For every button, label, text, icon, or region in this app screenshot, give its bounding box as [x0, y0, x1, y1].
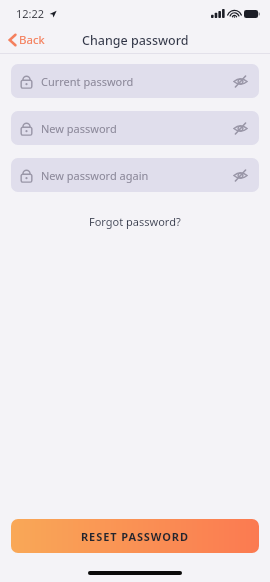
staticText: Forgot password? — [89, 214, 181, 229]
staticText: Back — [19, 32, 45, 48]
button[interactable]: New password — [11, 111, 259, 145]
button[interactable]: Current password — [11, 64, 259, 98]
button[interactable]: Forgot password? — [0, 210, 270, 233]
button[interactable]: Show password — [230, 165, 250, 185]
staticText: New password — [41, 121, 230, 136]
button[interactable]: Show password — [230, 118, 250, 138]
staticText: RESET PASSWORD — [81, 529, 189, 544]
button[interactable]: Show password — [230, 71, 250, 91]
staticText: 12:22 — [16, 6, 45, 21]
staticText: Change password — [82, 32, 189, 49]
staticText: New password again — [41, 168, 230, 183]
button[interactable]: RESET PASSWORD — [11, 519, 259, 553]
button[interactable]: Back — [0, 29, 53, 51]
staticText: Current password — [41, 74, 230, 89]
button[interactable]: New password again — [11, 158, 259, 192]
